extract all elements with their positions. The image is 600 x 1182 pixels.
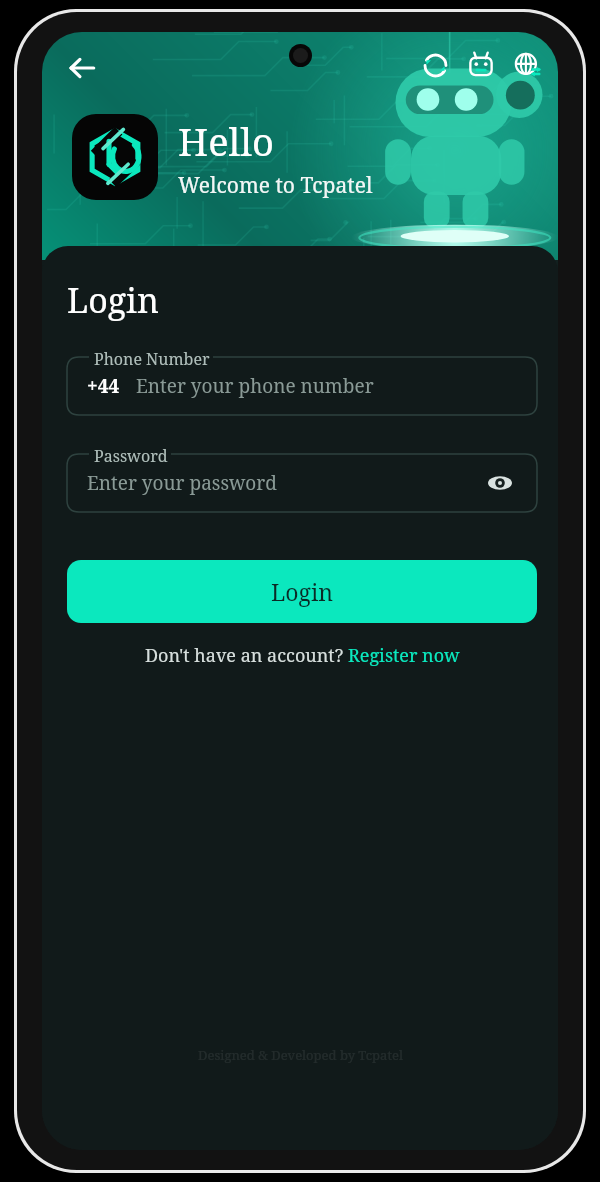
staticText: Register now: [348, 643, 460, 668]
staticText: Welcome to Tcpatel: [178, 171, 373, 200]
staticText: Enter your password: [87, 470, 277, 496]
staticText: Phone Number: [94, 348, 210, 370]
button[interactable]: +44: [87, 357, 517, 415]
staticText: Password: [94, 445, 168, 467]
staticText: +44: [87, 373, 120, 399]
button[interactable]: App logo: [72, 114, 158, 200]
staticText: Enter your phone number: [136, 373, 374, 399]
staticText: Designed & Developed by Tcpatel: [198, 1046, 403, 1064]
button[interactable]: Enter your password: [87, 454, 517, 512]
staticText: Hello: [178, 115, 274, 167]
button[interactable]: Back: [58, 44, 106, 92]
staticText: Login: [67, 277, 159, 323]
button[interactable]: Chat bot: [458, 42, 504, 88]
staticText: Login: [271, 576, 334, 607]
button[interactable]: Language: [504, 42, 550, 88]
staticText: Don't have an account?: [145, 643, 348, 668]
button[interactable]: Refresh: [412, 42, 458, 88]
button[interactable]: Register now: [348, 643, 460, 668]
button[interactable]: Show password: [483, 466, 517, 500]
button[interactable]: Login: [67, 560, 537, 623]
